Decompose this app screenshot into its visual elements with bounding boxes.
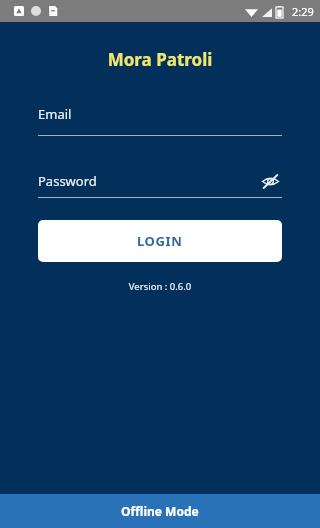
button[interactable]: Email xyxy=(38,105,282,136)
staticText: LOGIN xyxy=(137,232,183,250)
button[interactable]: LOGIN xyxy=(38,220,282,262)
staticText: Version : 0.6.0 xyxy=(0,280,320,293)
button[interactable]: Password xyxy=(38,169,282,193)
staticText: Email xyxy=(38,105,72,123)
staticText: Offline Mode xyxy=(121,503,199,519)
staticText: Mora Patroli xyxy=(0,48,320,71)
button[interactable]: Offline Mode xyxy=(0,494,320,528)
staticText: Password xyxy=(38,172,97,190)
button[interactable]: Show password xyxy=(258,169,282,193)
staticText: 2:29 xyxy=(292,4,314,19)
